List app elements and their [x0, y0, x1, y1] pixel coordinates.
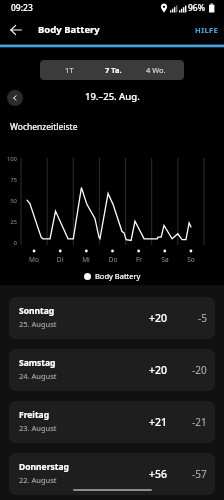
staticText: Di — [50, 255, 70, 264]
button[interactable]: Previous week — [7, 90, 23, 106]
staticText: Do — [103, 255, 123, 264]
button[interactable]: Donnerstag — [9, 453, 215, 495]
staticText: 7 Ta. — [105, 65, 122, 75]
staticText: 25 — [0, 218, 17, 226]
staticText: 19.–25. Aug. — [85, 90, 140, 103]
staticText: +21 — [149, 415, 168, 429]
staticText: -21 — [192, 415, 207, 429]
button[interactable]: 1T — [47, 60, 92, 80]
staticText: Donnerstag — [19, 461, 69, 473]
staticText: So — [181, 255, 201, 264]
button[interactable]: Sonntag — [9, 297, 215, 339]
staticText: 22. August — [19, 475, 57, 485]
staticText: +20 — [149, 311, 168, 325]
staticText: +56 — [149, 467, 168, 481]
button[interactable]: HILFE — [186, 19, 224, 41]
staticText: -57 — [192, 467, 207, 481]
staticText: 23. August — [19, 423, 57, 433]
button[interactable]: Back — [3, 17, 29, 43]
staticText: 96% — [188, 2, 205, 14]
staticText: 24. August — [19, 371, 57, 381]
staticText: 09:23 — [11, 2, 33, 14]
button[interactable]: 4 Wo. — [135, 60, 177, 80]
staticText: Freitag — [19, 409, 50, 421]
staticText: -20 — [192, 363, 207, 377]
staticText: +20 — [149, 363, 168, 377]
staticText: Body Battery — [95, 271, 141, 281]
staticText: Mi — [76, 255, 96, 264]
staticText: 75 — [0, 176, 17, 184]
staticText: HILFE — [195, 25, 219, 35]
staticText: Fr — [129, 255, 149, 264]
button[interactable]: Samstag — [9, 349, 215, 391]
staticText: Mo — [24, 255, 44, 264]
staticText: 0 — [0, 239, 17, 247]
staticText: Body Battery — [38, 23, 100, 36]
staticText: 1T — [65, 65, 74, 75]
staticText: 25. August — [19, 319, 57, 329]
staticText: Wochenzeitleiste — [10, 121, 78, 133]
staticText: 4 Wo. — [146, 65, 166, 75]
button[interactable]: Freitag — [9, 401, 215, 443]
staticText: -5 — [198, 311, 207, 325]
staticText: 50 — [0, 197, 17, 205]
staticText: 100 — [0, 155, 17, 163]
staticText: Sa — [155, 255, 175, 264]
staticText: Samstag — [19, 357, 56, 369]
button[interactable]: 7 Ta. — [92, 60, 135, 80]
staticText: Sonntag — [19, 305, 55, 317]
